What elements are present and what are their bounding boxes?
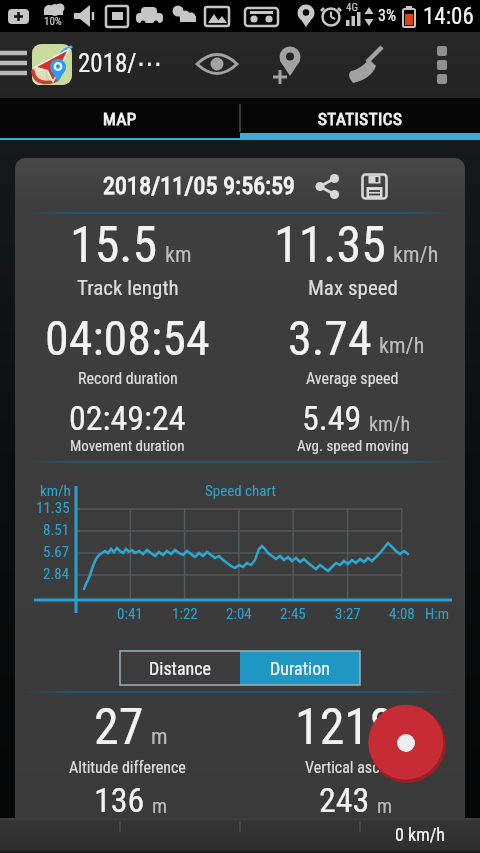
- staticText: MAP: [103, 109, 137, 129]
- staticText: 2018/⋯: [78, 49, 162, 78]
- button[interactable]: [346, 46, 388, 86]
- button[interactable]: [361, 173, 388, 200]
- staticText: km/h: [40, 482, 71, 500]
- staticText: 3:27: [335, 605, 361, 623]
- button[interactable]: Duration: [240, 651, 360, 685]
- staticText: H:m: [425, 605, 450, 623]
- staticText: Record duration: [78, 369, 178, 388]
- staticText: 4G: [346, 1, 358, 14]
- staticText: 27: [94, 698, 144, 757]
- button[interactable]: Distance: [120, 651, 240, 685]
- staticText: 8.51: [43, 521, 70, 539]
- button[interactable]: [272, 46, 308, 86]
- staticText: 5.67: [43, 543, 70, 561]
- button[interactable]: [367, 704, 446, 783]
- staticText: 02:49:24: [69, 398, 186, 438]
- staticText: 2.84: [43, 565, 70, 583]
- button[interactable]: [428, 46, 456, 90]
- staticText: m: [401, 724, 418, 750]
- staticText: Speed chart: [205, 482, 276, 500]
- staticText: 11.35: [36, 499, 70, 517]
- staticText: 1:22: [172, 605, 198, 623]
- staticText: km/h: [369, 412, 411, 435]
- button[interactable]: [0, 32, 32, 98]
- staticText: 243: [319, 780, 370, 820]
- staticText: 0:41: [117, 605, 143, 623]
- staticText: Average speed: [306, 369, 399, 388]
- staticText: 136: [94, 780, 145, 820]
- staticText: m: [151, 724, 168, 750]
- staticText: 10%: [44, 15, 62, 28]
- staticText: Track length: [77, 276, 179, 301]
- button[interactable]: MAP: [0, 98, 240, 140]
- button[interactable]: STATISTICS: [240, 98, 480, 140]
- staticText: 2:45: [280, 605, 306, 623]
- staticText: km/h: [393, 242, 439, 268]
- staticText: Vertical ascent: [305, 758, 400, 777]
- staticText: Max speed: [308, 276, 398, 301]
- staticText: 3.74: [288, 310, 372, 366]
- staticText: Avg. speed moving: [297, 437, 409, 455]
- staticText: 3%: [378, 6, 397, 25]
- staticText: km/h: [379, 333, 425, 359]
- staticText: 14:06: [423, 3, 474, 30]
- staticText: 1218: [295, 698, 394, 757]
- staticText: Duration: [270, 658, 330, 679]
- staticText: km: [165, 242, 192, 268]
- staticText: STATISTICS: [318, 109, 403, 129]
- button[interactable]: [195, 50, 239, 78]
- staticText: m: [377, 794, 393, 817]
- staticText: 04:08:54: [45, 310, 210, 366]
- staticText: 15.5: [70, 216, 158, 275]
- staticText: 5.49: [302, 398, 362, 438]
- staticText: 2018/11/05 9:56:59: [103, 172, 296, 200]
- staticText: 0 km/h: [395, 824, 446, 845]
- staticText: 2:04: [226, 605, 252, 623]
- staticText: 4:08: [389, 605, 415, 623]
- button[interactable]: [315, 174, 340, 199]
- staticText: Movement duration: [70, 437, 185, 455]
- staticText: m: [152, 794, 168, 817]
- staticText: Altitude difference: [69, 758, 186, 777]
- staticText: 11.35: [274, 216, 386, 275]
- button[interactable]: [32, 44, 72, 85]
- staticText: Distance: [149, 658, 212, 679]
